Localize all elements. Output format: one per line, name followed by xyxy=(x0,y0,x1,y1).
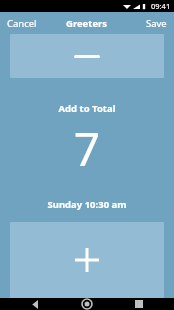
button[interactable]: Cancel xyxy=(0,13,44,34)
button[interactable]: Back xyxy=(18,298,52,310)
button[interactable]: Increase xyxy=(10,222,164,298)
staticText: Add to Total xyxy=(0,102,174,115)
staticText: Greeters xyxy=(66,17,108,30)
staticText: Save xyxy=(146,17,167,30)
button[interactable]: Save xyxy=(139,13,174,34)
staticText: Cancel xyxy=(7,17,37,30)
button[interactable]: Decrease xyxy=(10,34,164,78)
button[interactable]: Recent apps xyxy=(122,298,156,310)
button[interactable]: Home xyxy=(70,298,104,310)
staticText: 09:41 xyxy=(151,1,171,11)
staticText: Sunday 10:30 am xyxy=(0,198,174,211)
staticText: 7 xyxy=(0,117,174,180)
